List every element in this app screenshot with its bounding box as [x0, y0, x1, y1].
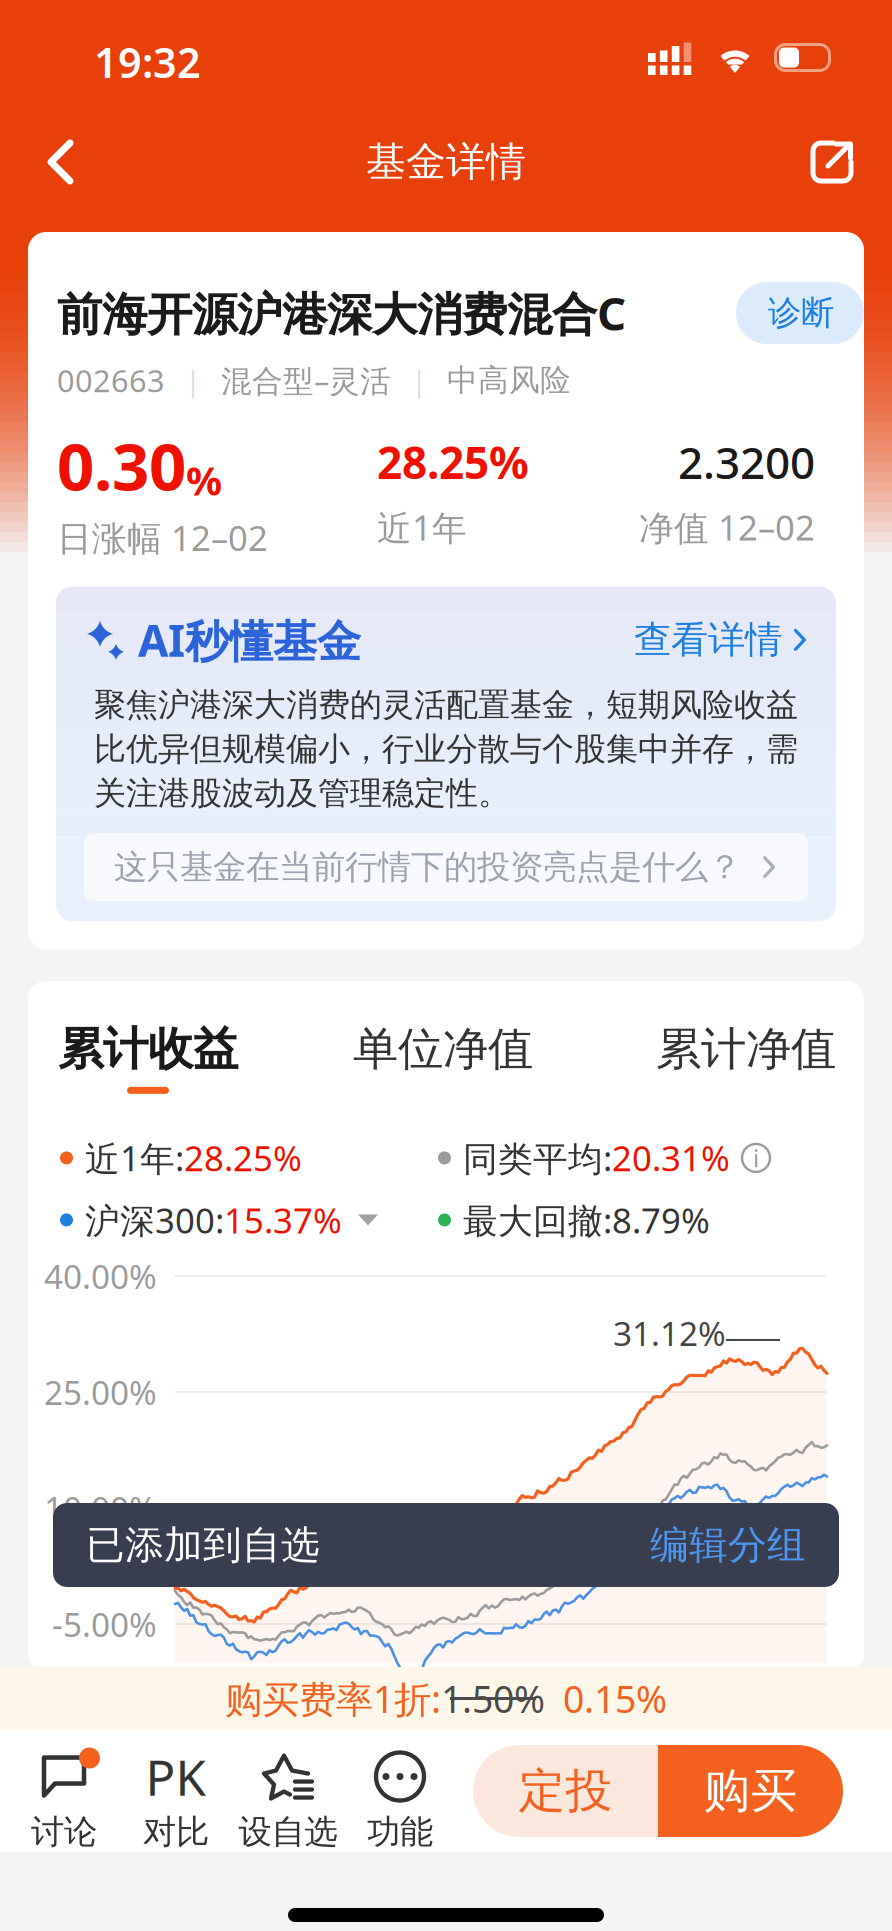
- staticText: 15.37%: [224, 1197, 342, 1243]
- staticText: 聚焦沪港深大消费的灵活配置基金，短期风险收益比优异但规模偏小，行业分散与个股集中…: [94, 685, 798, 813]
- staticText: 对比: [143, 1811, 209, 1852]
- button[interactable]: Back: [22, 124, 98, 200]
- staticText: 购买费率1折:: [225, 1674, 441, 1723]
- staticText: 沪深300:: [85, 1197, 224, 1243]
- button[interactable]: 编辑分组: [650, 1521, 806, 1569]
- staticText: 31.12%: [613, 1311, 726, 1355]
- button[interactable]: 累计收益: [58, 1021, 318, 1094]
- staticText: 19:32: [94, 35, 201, 89]
- staticText: 这只基金在当前行情下的投资亮点是什么？: [114, 847, 741, 887]
- staticText: 混合型–灵活: [221, 360, 391, 401]
- button[interactable]: Share: [794, 124, 870, 200]
- staticText: 定投: [518, 1762, 612, 1820]
- button[interactable]: 功能: [344, 1730, 456, 1852]
- staticText: 25.00%: [44, 1370, 157, 1414]
- staticText: 设自选: [238, 1811, 337, 1852]
- button[interactable]: 讨论: [8, 1730, 120, 1852]
- staticText: -5.00%: [52, 1602, 157, 1646]
- button[interactable]: 累计净值: [656, 1021, 836, 1077]
- staticText: 8.79%: [612, 1197, 710, 1243]
- staticText: 累计收益: [58, 1021, 238, 1077]
- staticText: 功能: [367, 1811, 433, 1852]
- staticText: i: [753, 1142, 759, 1174]
- staticText: PK: [145, 1744, 206, 1809]
- button[interactable]: 这只基金在当前行情下的投资亮点是什么？: [84, 833, 808, 901]
- button[interactable]: 设自选: [232, 1730, 344, 1852]
- staticText: 最大回撤:: [463, 1197, 612, 1243]
- staticText: 002663: [57, 360, 165, 401]
- button[interactable]: 购买: [658, 1745, 843, 1837]
- staticText: 近1年:: [85, 1135, 184, 1181]
- staticText: 10.00%: [44, 1486, 157, 1530]
- staticText: 前海开源沪港深大消费混合C: [57, 283, 626, 343]
- staticText: |: [411, 361, 427, 400]
- staticText: 近1年: [377, 504, 467, 550]
- staticText: 28.25%: [377, 433, 529, 491]
- staticText: 基金详情: [366, 137, 526, 186]
- staticText: 40.00%: [44, 1254, 157, 1298]
- staticText: 已添加到自选: [86, 1521, 320, 1569]
- staticText: AI秒懂基金: [138, 610, 361, 669]
- staticText: 同类平均:: [463, 1135, 612, 1181]
- staticText: 中高风险: [447, 361, 571, 399]
- button[interactable]: 诊断: [736, 282, 864, 344]
- staticText: 日涨幅 12–02: [57, 514, 268, 560]
- staticText: 28.25%: [184, 1135, 302, 1181]
- staticText: 累计净值: [656, 1021, 836, 1077]
- staticText: 净值 12–02: [639, 504, 815, 550]
- staticText: 0.30: [57, 422, 186, 508]
- staticText: 编辑分组: [650, 1521, 806, 1569]
- staticText: 购买: [703, 1762, 797, 1820]
- staticText: |: [185, 361, 201, 400]
- staticText: 单位净值: [353, 1021, 533, 1077]
- staticText: %: [186, 453, 222, 506]
- staticText: 20.31%: [612, 1135, 730, 1181]
- staticText: 讨论: [31, 1811, 97, 1852]
- staticText: 1.50%: [441, 1674, 545, 1723]
- staticText: 诊断: [768, 292, 834, 333]
- button[interactable]: 查看详情: [634, 617, 806, 663]
- staticText: 2.3200: [678, 433, 815, 491]
- staticText: 0.15%: [563, 1674, 667, 1723]
- button[interactable]: PK: [120, 1730, 232, 1852]
- button[interactable]: 定投: [473, 1745, 658, 1837]
- button[interactable]: 单位净值: [318, 1021, 568, 1077]
- staticText: 查看详情: [634, 617, 782, 663]
